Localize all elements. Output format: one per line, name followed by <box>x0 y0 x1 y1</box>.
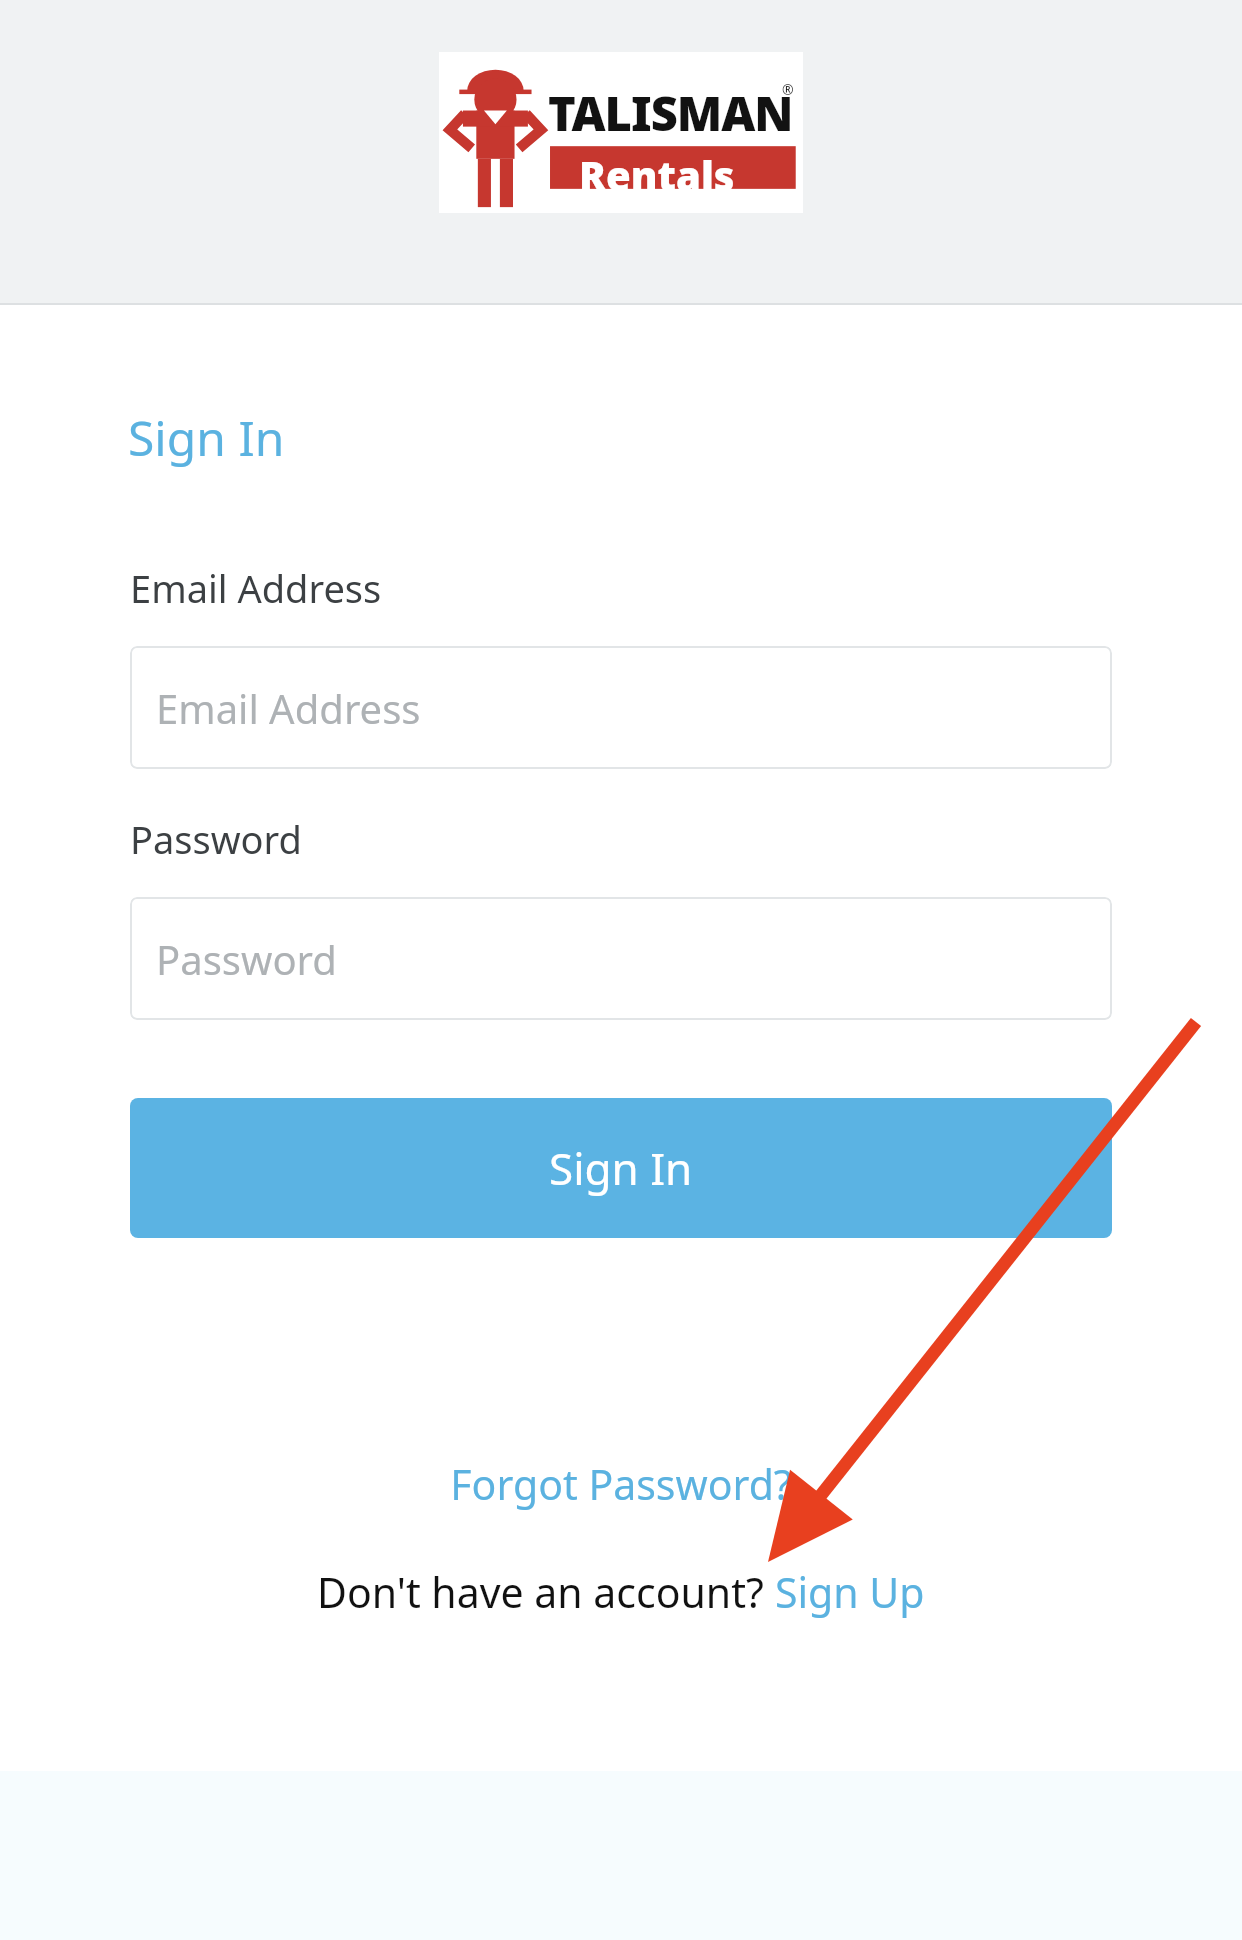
staticText: Password <box>130 813 302 865</box>
staticText: ® <box>782 80 794 99</box>
staticText: Email Address <box>130 562 382 614</box>
button[interactable]: Email Address <box>130 646 1112 769</box>
staticText: Don't have an account? <box>317 1564 775 1620</box>
button[interactable]: Talisman Rentals logo <box>439 52 803 213</box>
button[interactable]: Sign In <box>130 1098 1112 1238</box>
button[interactable]: Password <box>130 897 1112 1020</box>
staticText: Password <box>156 932 337 986</box>
staticText: Rentals <box>579 148 735 202</box>
staticText: Sign In <box>549 1138 693 1198</box>
staticText: Sign In <box>128 405 285 470</box>
staticText: Sign Up <box>775 1564 925 1620</box>
staticText: TALISMAN <box>548 81 793 145</box>
staticText: Forgot Password? <box>450 1456 792 1512</box>
button[interactable]: Forgot Password? <box>434 1448 808 1520</box>
staticText: Email Address <box>156 681 421 735</box>
button[interactable]: Sign Up <box>775 1564 925 1620</box>
